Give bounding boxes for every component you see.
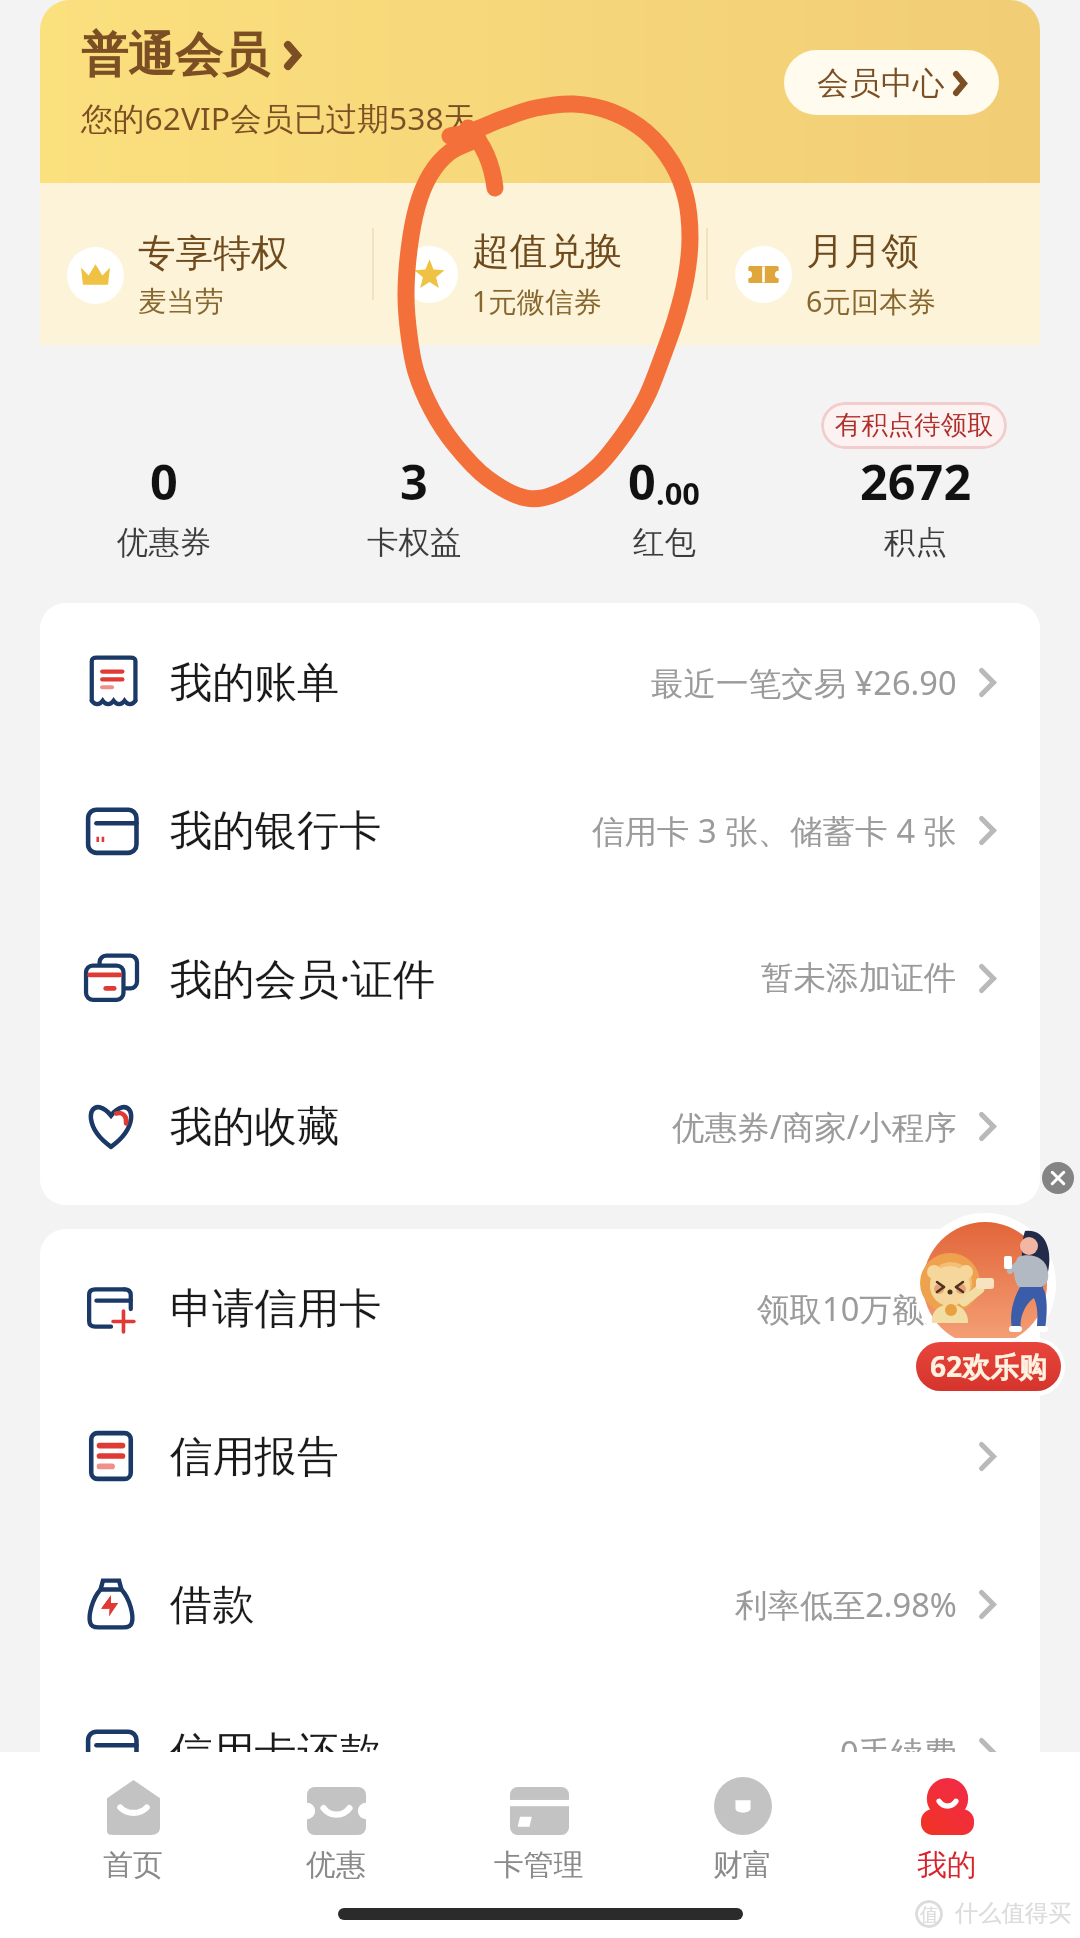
button[interactable]: Close ad (1042, 1162, 1074, 1194)
staticText: 首页 (103, 1846, 163, 1883)
staticText: 我的会员·证件 (170, 949, 436, 1007)
staticText: 我的账单 (170, 656, 340, 709)
button[interactable]: 专享特权 (40, 209, 372, 320)
staticText: 什么值得买 (955, 1899, 1072, 1928)
button[interactable]: 超值兑换 (374, 207, 706, 321)
button[interactable]: 普通会员 (40, 0, 1040, 183)
button[interactable]: 信用卡还款 (40, 1678, 1040, 1826)
button[interactable]: 0 (39, 448, 289, 563)
button[interactable]: 有积点待领取 (821, 402, 1007, 449)
staticText: 我的 (917, 1846, 977, 1883)
staticText: 优惠券/商家/小程序 (672, 1104, 957, 1148)
staticText: 优惠券 (117, 523, 212, 563)
staticText: 信用卡还款 (170, 1726, 382, 1779)
button[interactable]: 我的账单 (40, 608, 1040, 756)
button[interactable]: 我的银行卡 (40, 756, 1040, 904)
staticText: 3 (400, 448, 428, 514)
staticText: 0 (150, 448, 178, 514)
button[interactable]: 财富 (641, 1777, 845, 1883)
staticText: 0 (628, 448, 656, 514)
staticText: 会员中心 (817, 63, 945, 103)
staticText: 借款 (170, 1578, 255, 1631)
staticText: 领取10万额度 (757, 1286, 957, 1330)
staticText: 卡管理 (494, 1846, 584, 1883)
staticText: 我的收藏 (170, 1100, 340, 1153)
button[interactable]: 会员中心 (784, 50, 999, 115)
button[interactable]: 3 (289, 448, 539, 563)
staticText: 专享特权 (138, 230, 289, 277)
staticText: 利率低至2.98% (735, 1582, 957, 1626)
staticText: 申请信用卡 (170, 1282, 382, 1335)
button[interactable]: 我的收藏 (40, 1052, 1040, 1200)
button[interactable]: 2672 (790, 448, 1041, 563)
staticText: 最近一笔交易 ¥26.90 (651, 660, 957, 704)
staticText: 麦当劳 (138, 284, 224, 320)
staticText: 卡权益 (367, 523, 462, 563)
staticText: 2672 (860, 448, 972, 514)
button[interactable]: 0 (539, 448, 790, 563)
staticText: 我的银行卡 (170, 804, 382, 857)
staticText: 62欢乐购 (930, 1347, 1047, 1386)
button[interactable]: 我的会员·证件 (40, 904, 1040, 1052)
staticText: 普通会员 (81, 26, 270, 85)
staticText: 红包 (633, 523, 696, 563)
button[interactable]: 信用报告 (40, 1382, 1040, 1530)
staticText: 有积点待领取 (835, 409, 994, 442)
button[interactable]: 借款 (40, 1530, 1040, 1678)
button[interactable]: 月月领 (708, 207, 1040, 321)
staticText: 信用报告 (170, 1430, 340, 1483)
staticText: 0手续费 (840, 1730, 957, 1774)
staticText: 1元微信券 (472, 282, 603, 321)
staticText: 值 (920, 1903, 939, 1926)
button[interactable]: 我的 (845, 1777, 1049, 1883)
button[interactable]: 卡管理 (437, 1777, 641, 1883)
button[interactable]: 申请信用卡 (40, 1234, 1040, 1382)
staticText: 财富 (713, 1846, 773, 1883)
button[interactable]: 优惠 (234, 1777, 437, 1883)
button[interactable]: 首页 (31, 1777, 234, 1883)
staticText: 积点 (884, 523, 947, 563)
staticText: 月月领 (806, 228, 919, 275)
staticText: 6元回本券 (806, 282, 937, 321)
staticText: 优惠 (306, 1846, 366, 1883)
staticText: 暂未添加证件 (761, 958, 957, 999)
staticText: .00 (656, 472, 701, 514)
staticText: 您的62VIP会员已过期538天 (81, 96, 476, 139)
staticText: 信用卡 3 张、储蓄卡 4 张 (592, 808, 957, 852)
staticText: 超值兑换 (472, 228, 623, 275)
